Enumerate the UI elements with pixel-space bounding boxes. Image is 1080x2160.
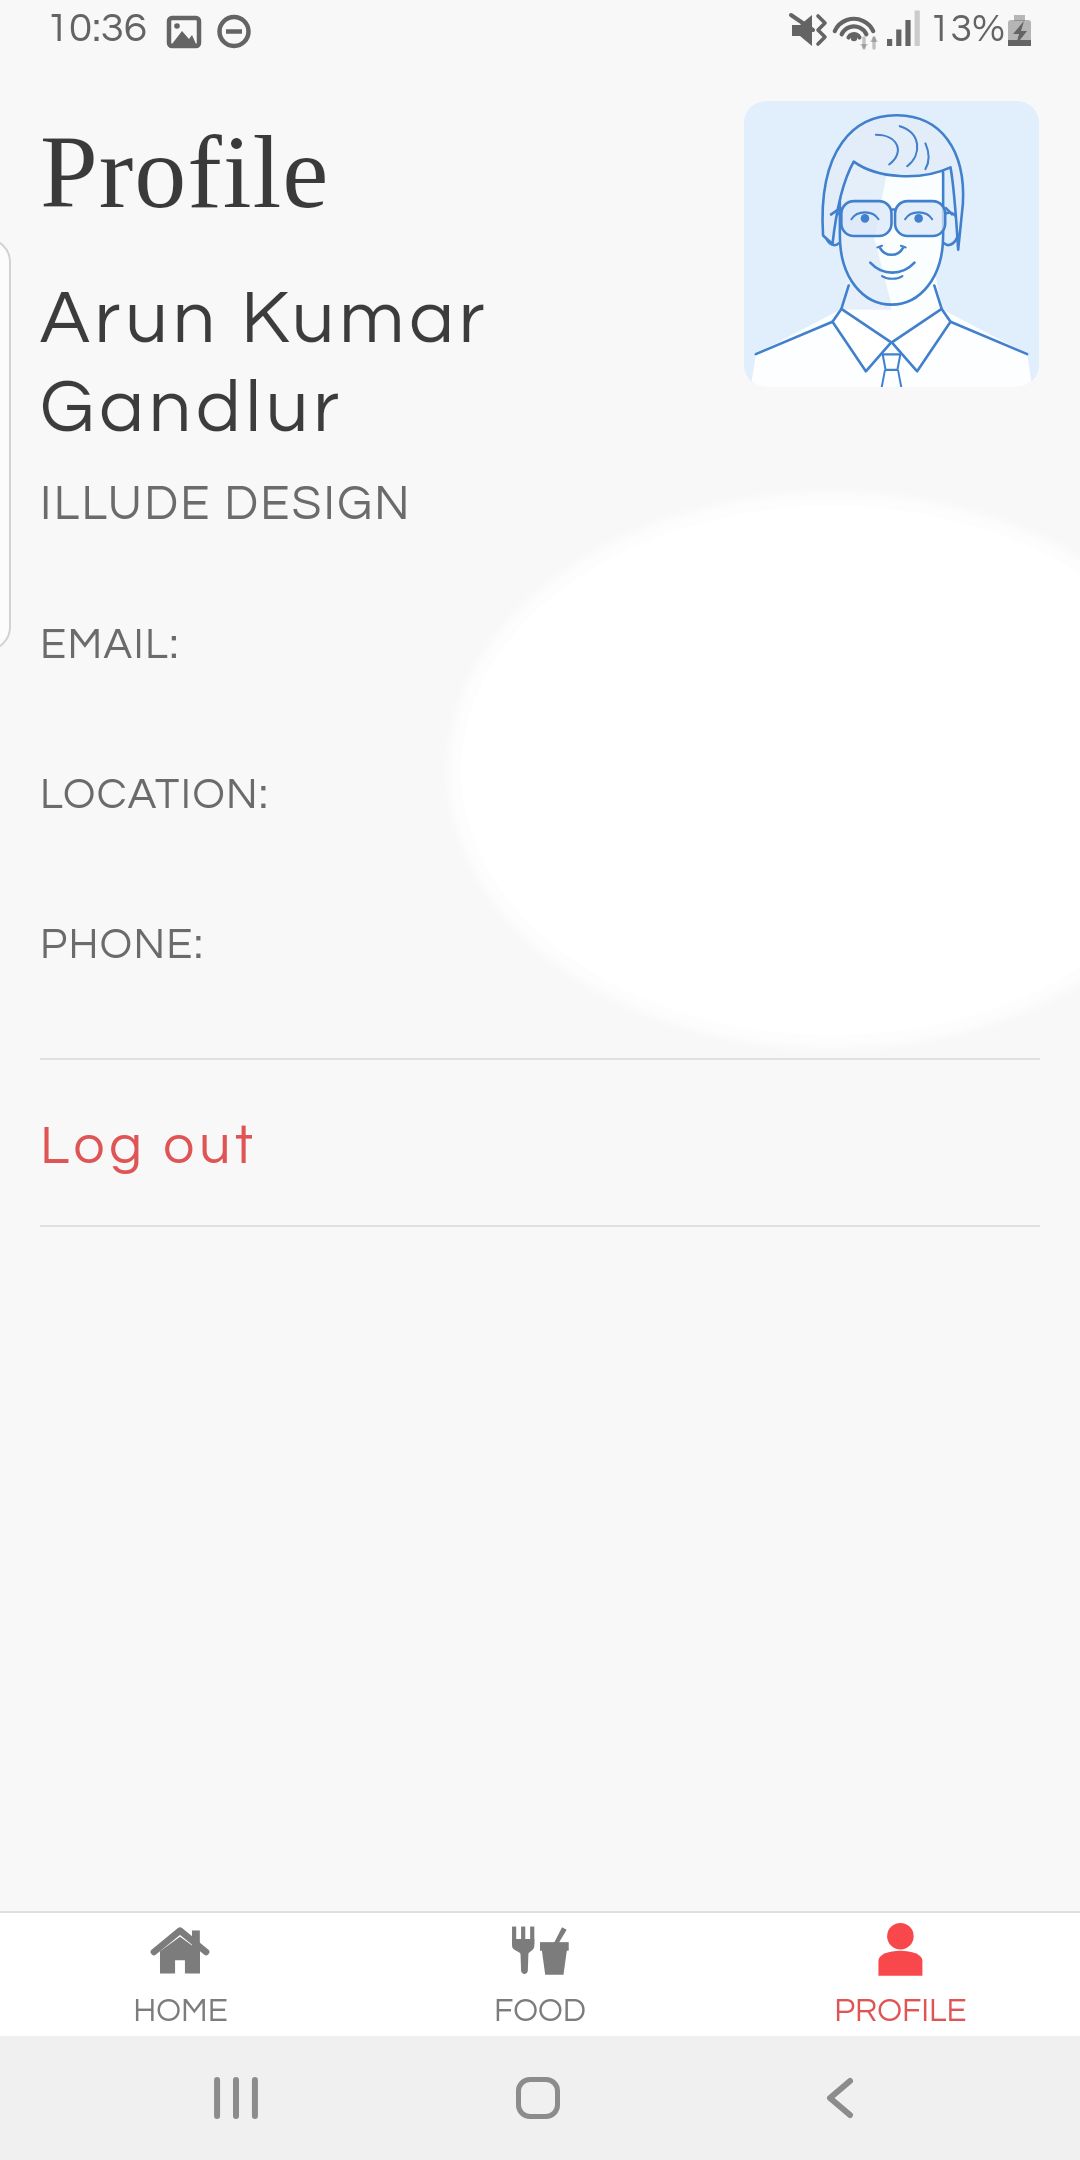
staticText: PHONE: — [40, 923, 205, 967]
staticText: 13% — [929, 9, 1005, 49]
staticText: HOME — [133, 1994, 228, 2028]
staticText: LOCATION: — [40, 773, 270, 817]
button[interactable]: FOOD — [360, 1911, 720, 2036]
staticText: Profile — [40, 114, 330, 229]
button[interactable]: Home — [478, 2036, 598, 2160]
button[interactable]: Profile photo — [744, 101, 1039, 387]
staticText: Arun Kumar Gandlur — [40, 280, 490, 447]
staticText: 10:36 — [46, 7, 147, 50]
button[interactable]: Log out — [0, 1064, 1080, 1229]
staticText: FOOD — [494, 1994, 586, 2028]
other: System navigation bar — [0, 2036, 1080, 2160]
staticText: ILLUDE DESIGN — [40, 480, 412, 529]
button[interactable]: PROFILE — [720, 1911, 1080, 2036]
staticText: EMAIL: — [40, 623, 180, 667]
staticText: Log out — [40, 1118, 258, 1175]
button[interactable]: Recent apps — [176, 2036, 296, 2160]
button[interactable]: Back — [780, 2036, 900, 2160]
button[interactable]: HOME — [0, 1911, 360, 2036]
staticText: PROFILE — [834, 1994, 967, 2028]
